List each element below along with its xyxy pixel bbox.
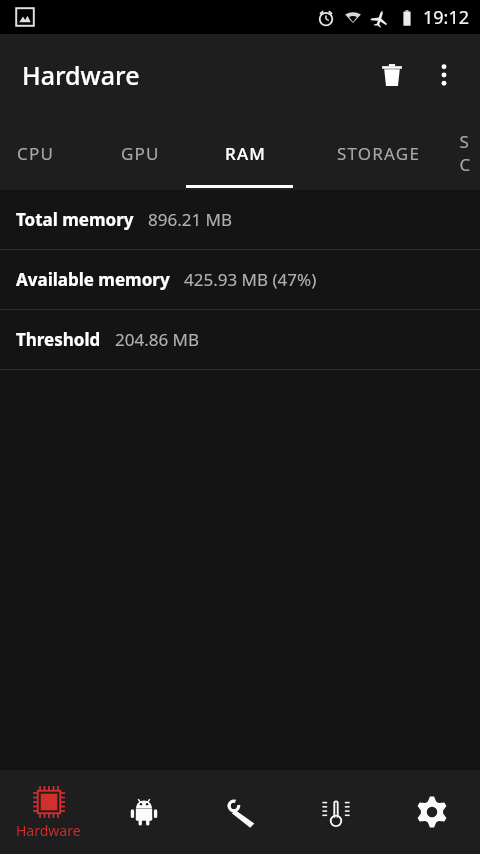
staticText: Total memory <box>16 208 134 231</box>
button[interactable]: More options <box>418 49 470 101</box>
staticText: SC <box>459 130 464 176</box>
staticText: Hardware <box>22 58 140 92</box>
button[interactable]: Tools <box>192 770 288 854</box>
staticText: Threshold <box>16 328 101 351</box>
button[interactable]: Delete <box>366 49 418 101</box>
staticText: 896.21 MB <box>148 208 233 231</box>
staticText: STORAGE <box>337 142 421 165</box>
button[interactable]: CPU <box>0 116 88 190</box>
button[interactable]: SC <box>459 116 464 190</box>
staticText: Available memory <box>16 268 170 291</box>
staticText: CPU <box>17 142 55 165</box>
button[interactable]: RAM <box>192 116 299 190</box>
button[interactable]: STORAGE <box>299 116 459 190</box>
button[interactable]: Android info <box>96 770 192 854</box>
button[interactable]: GPU <box>88 116 192 190</box>
staticText: RAM <box>225 142 267 165</box>
button[interactable]: Hardware <box>0 770 96 854</box>
staticText: 19:12 <box>423 5 470 30</box>
button[interactable]: Available memory <box>0 250 480 309</box>
button[interactable]: Threshold <box>0 310 480 369</box>
staticText: 204.86 MB <box>115 328 200 351</box>
staticText: Hardware <box>16 821 81 840</box>
button[interactable]: Temperature <box>288 770 384 854</box>
staticText: 425.93 MB (47%) <box>184 268 317 291</box>
button[interactable]: Total memory <box>0 190 480 249</box>
button[interactable]: Settings <box>384 770 480 854</box>
staticText: GPU <box>121 142 160 165</box>
